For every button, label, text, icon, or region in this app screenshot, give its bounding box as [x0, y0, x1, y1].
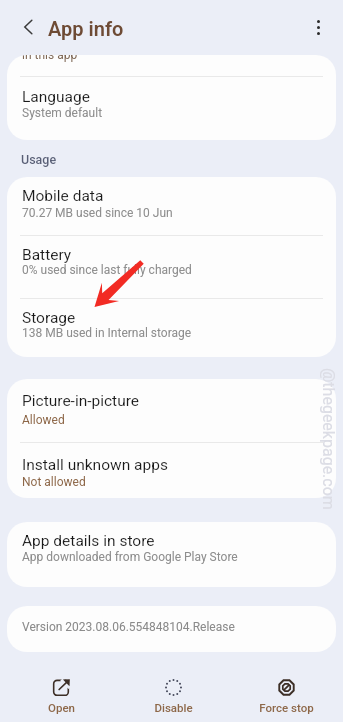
- staticText: Usage: [21, 152, 57, 167]
- button[interactable]: App details in store: [7, 522, 336, 587]
- button[interactable]: Storage: [7, 299, 336, 357]
- staticText: App downloaded from Google Play Store: [22, 550, 238, 564]
- staticText: App details in store: [22, 532, 155, 550]
- staticText: 0% used since last fully charged: [22, 263, 192, 277]
- staticText: Force stop: [259, 701, 314, 714]
- button[interactable]: Install unknown apps: [7, 443, 336, 498]
- staticText: Language: [22, 88, 90, 106]
- staticText: System default: [22, 106, 103, 120]
- button[interactable]: Open: [5, 679, 117, 714]
- staticText: App info: [48, 17, 124, 40]
- staticText: 70.27 MB used since 10 Jun: [22, 206, 173, 220]
- button[interactable]: More options: [300, 9, 336, 45]
- staticText: Disable: [154, 701, 193, 714]
- staticText: Not allowed: [22, 475, 86, 489]
- staticText: Mobile data: [22, 187, 104, 205]
- staticText: 138 MB used in Internal storage: [22, 326, 192, 340]
- button[interactable]: Back: [8, 7, 48, 47]
- button[interactable]: Mobile data: [7, 177, 336, 235]
- staticText: Version 2023.08.06.554848104.Release: [22, 620, 235, 634]
- button[interactable]: Picture-in-picture: [7, 379, 336, 441]
- button[interactable]: Battery: [7, 236, 336, 297]
- button[interactable]: Language: [7, 77, 336, 140]
- staticText: in this app: [22, 55, 78, 62]
- staticText: Allowed: [22, 413, 65, 427]
- staticText: Picture-in-picture: [22, 392, 140, 410]
- button[interactable]: Disable: [117, 679, 230, 714]
- staticText: Storage: [22, 309, 76, 327]
- staticText: Open: [48, 701, 75, 714]
- staticText: Battery: [22, 246, 72, 264]
- button[interactable]: Force stop: [230, 679, 343, 714]
- staticText: @thegeekpage.com: [320, 368, 338, 510]
- staticText: Install unknown apps: [22, 456, 168, 474]
